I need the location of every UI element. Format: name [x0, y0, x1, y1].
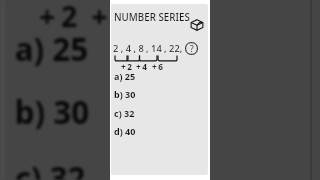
staticText: d) 40 — [114, 125, 136, 137]
staticText: +6 — [147, 0, 192, 34]
staticText: +6 — [152, 61, 165, 72]
staticText: +2 — [39, 0, 84, 34]
button[interactable]: c) 32 — [111, 102, 208, 120]
staticText: a) 25 — [114, 70, 136, 82]
staticText: +2 — [121, 61, 134, 72]
button[interactable]: Topic: 3D package — [190, 18, 204, 32]
staticText: a) 25 — [15, 27, 91, 68]
staticText: 2 , 4 , 8 , 14 , 22, — [113, 42, 183, 55]
button[interactable]: Missing term — [185, 42, 198, 55]
staticText: c) 32 — [15, 155, 88, 180]
staticText: +4 — [91, 0, 136, 34]
button[interactable]: b) 30 — [111, 83, 208, 101]
staticText: b) 30 — [114, 88, 136, 100]
staticText: NUMBER SERIES — [114, 11, 190, 24]
staticText: c) 32 — [114, 107, 135, 119]
button[interactable]: a) 25 — [111, 65, 208, 83]
staticText: b) 30 — [15, 89, 91, 131]
staticText: ? — [190, 43, 194, 55]
button[interactable]: d) 40 — [111, 120, 208, 138]
staticText: +4 — [136, 61, 149, 72]
